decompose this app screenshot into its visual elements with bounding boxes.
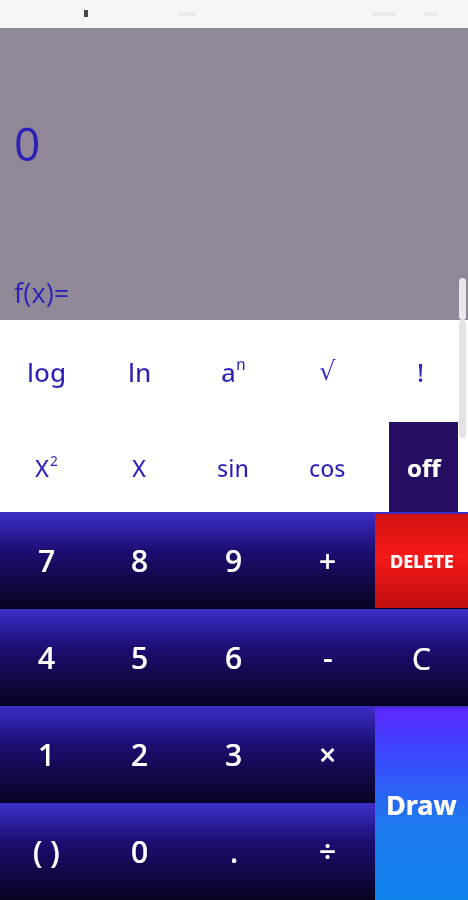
button[interactable]: DELETE [375, 514, 468, 608]
staticText: Draw [386, 786, 457, 823]
staticText: ! [417, 354, 425, 389]
staticText: 5 [131, 637, 149, 678]
staticText: f(x)= [14, 274, 70, 311]
button[interactable]: 5 [93, 609, 187, 706]
staticText: C [412, 638, 431, 679]
button[interactable]: off [389, 422, 458, 512]
staticText: cos [309, 452, 346, 483]
button[interactable]: C [375, 610, 468, 706]
button[interactable]: + [281, 512, 375, 609]
staticText: 0 [14, 112, 41, 175]
staticText: 1 [38, 734, 56, 775]
staticText: 3 [225, 734, 243, 775]
staticText: 0 [131, 831, 149, 872]
button[interactable]: 6 [187, 609, 281, 706]
button[interactable]: ! [374, 320, 468, 422]
button[interactable]: - [281, 609, 375, 706]
staticText: a [221, 354, 236, 389]
staticText: off [407, 451, 441, 484]
staticText: 7 [38, 540, 56, 581]
button[interactable]: ( ) [0, 803, 93, 900]
button[interactable]: √ [280, 320, 374, 422]
button[interactable]: 4 [0, 609, 93, 706]
button[interactable]: 8 [93, 512, 187, 609]
button[interactable]: X [0, 422, 93, 512]
staticText: n [236, 353, 246, 374]
button[interactable]: ln [93, 320, 186, 422]
staticText: 2 [131, 734, 149, 775]
staticText: 8 [131, 540, 149, 581]
staticText: . [230, 831, 239, 872]
staticText: X [132, 452, 147, 483]
button[interactable]: log [0, 320, 93, 422]
staticText: 9 [225, 540, 243, 581]
button[interactable]: 1 [0, 706, 93, 803]
button[interactable]: X [93, 422, 186, 512]
staticText: ( ) [33, 831, 60, 872]
staticText: X [35, 452, 50, 483]
staticText: 4 [38, 637, 56, 678]
staticText: × [319, 734, 337, 775]
button[interactable]: 9 [187, 512, 281, 609]
button[interactable]: tan [374, 422, 468, 512]
staticText: + [319, 540, 337, 581]
staticText: DELETE [390, 549, 454, 574]
staticText: √ [319, 356, 336, 386]
button[interactable]: 3 [187, 706, 281, 803]
button[interactable]: 0 [93, 803, 187, 900]
staticText: 2 [50, 451, 58, 470]
button[interactable]: sin [186, 422, 280, 512]
staticText: log [27, 354, 67, 389]
staticText: tan [403, 452, 440, 483]
button[interactable]: cos [280, 422, 374, 512]
button[interactable]: a [186, 320, 280, 422]
staticText: ÷ [319, 831, 337, 872]
button[interactable]: Draw [375, 708, 468, 900]
button[interactable]: . [187, 803, 281, 900]
button[interactable]: × [281, 706, 375, 803]
staticText: sin [217, 452, 249, 483]
button[interactable]: 7 [0, 512, 93, 609]
button[interactable]: ÷ [281, 803, 375, 900]
staticText: - [323, 637, 333, 678]
button[interactable]: 2 [93, 706, 187, 803]
staticText: ln [128, 354, 152, 389]
staticText: 6 [225, 637, 243, 678]
